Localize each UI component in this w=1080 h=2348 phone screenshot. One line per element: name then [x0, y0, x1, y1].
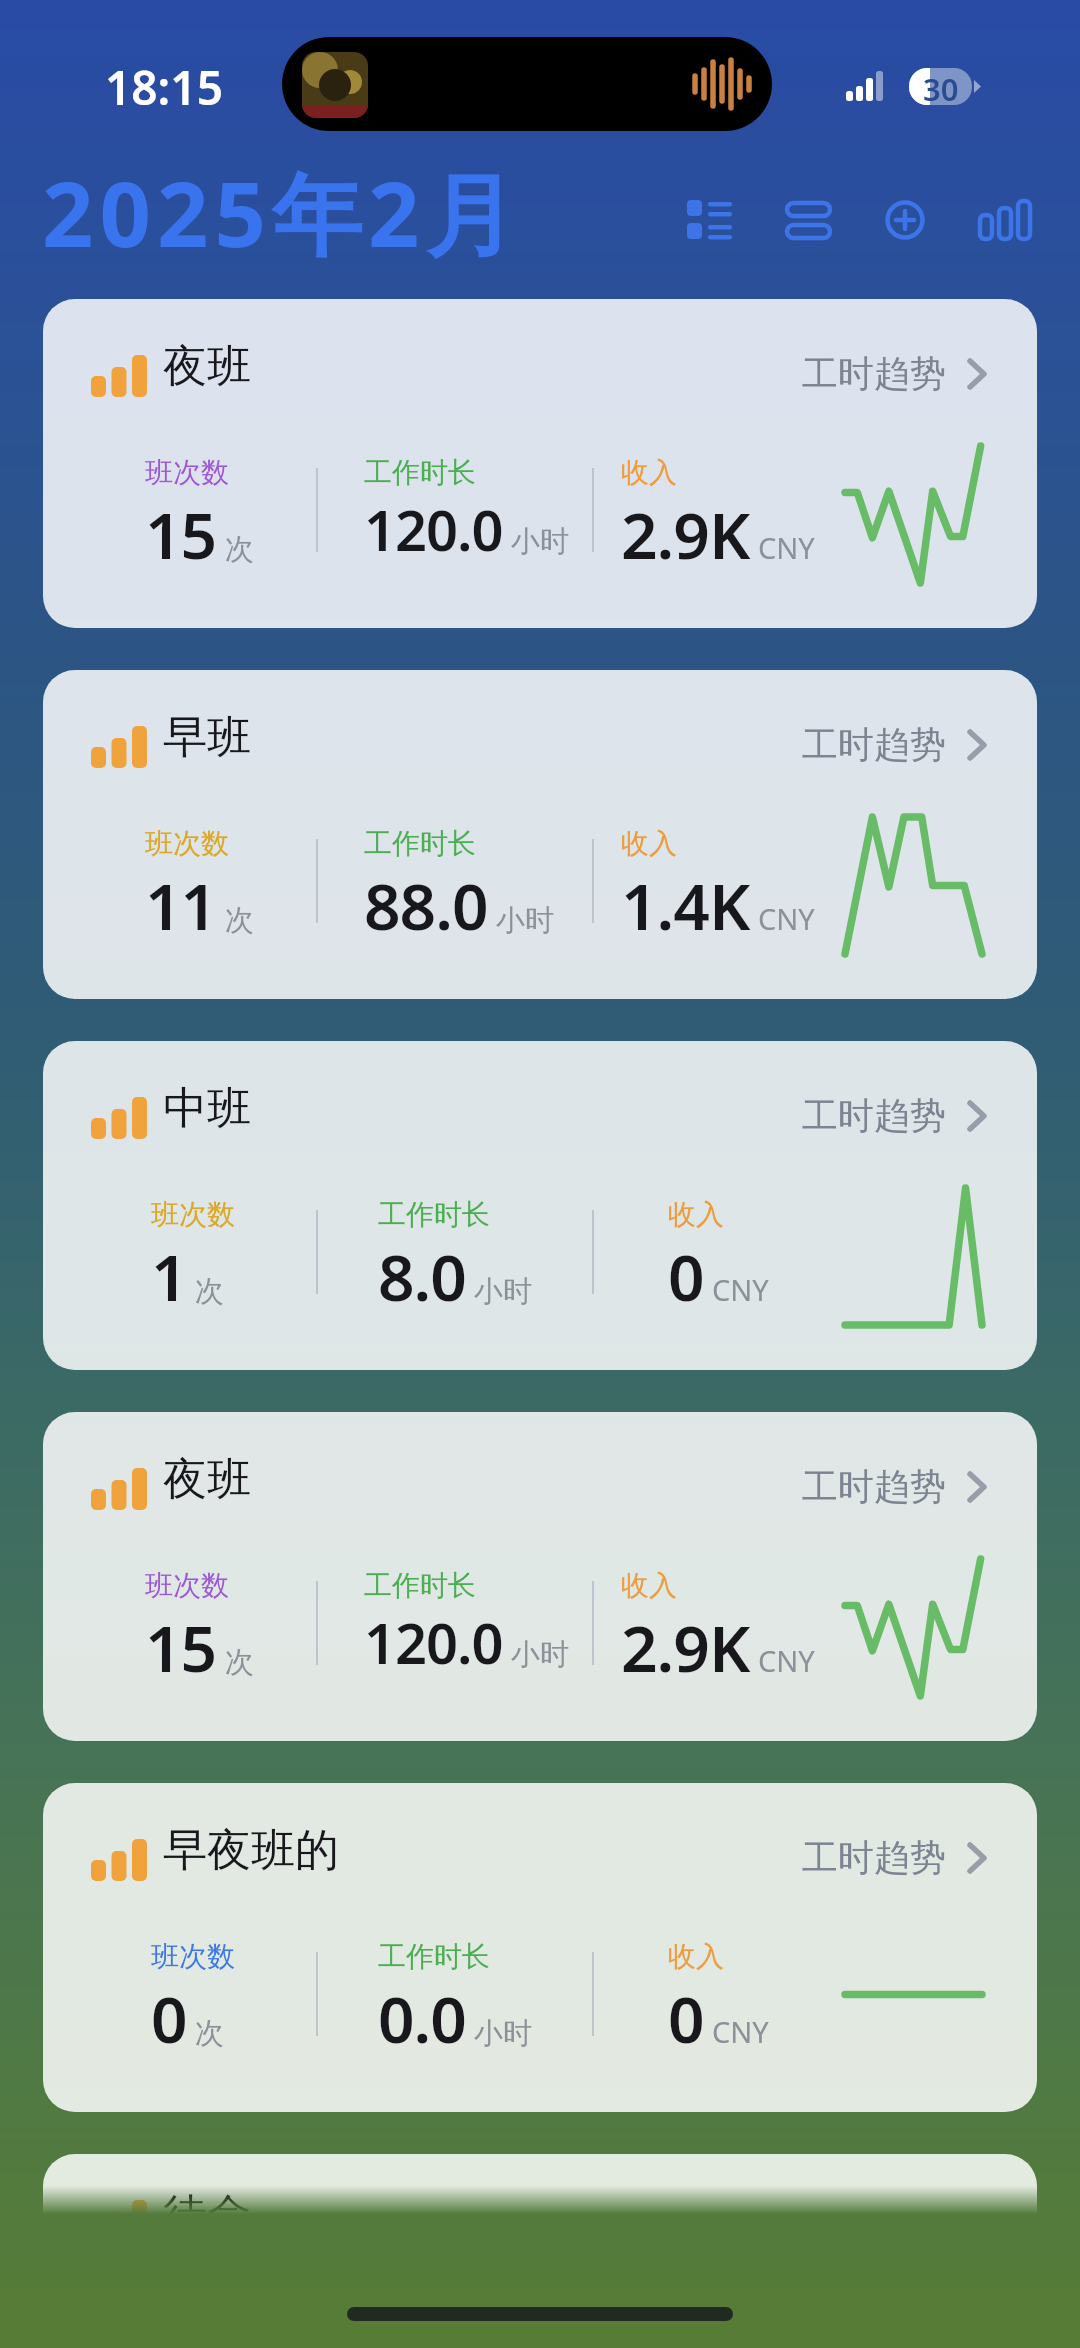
- staticText: 2.9K: [621, 491, 750, 578]
- staticText: 8.0: [378, 1233, 466, 1320]
- button[interactable]: [785, 201, 832, 241]
- staticText: CNY: [758, 899, 815, 938]
- staticText: 次: [225, 902, 254, 939]
- staticText: 工作时长: [364, 1568, 476, 1603]
- staticText: 待命: [163, 2188, 251, 2214]
- staticText: 工时趋势: [802, 351, 946, 396]
- staticText: 班次数: [151, 1939, 235, 1974]
- staticText: 工作时长: [364, 455, 476, 490]
- staticText: 工时趋势: [802, 1464, 946, 1509]
- button[interactable]: 夜班: [43, 1412, 1037, 1741]
- staticText: 收入: [668, 1939, 724, 1974]
- staticText: 早夜班的: [163, 1823, 339, 1878]
- staticText: 工时趋势: [802, 722, 946, 767]
- button[interactable]: 早夜班的: [43, 1783, 1037, 2112]
- button[interactable]: 工时趋势: [802, 351, 986, 396]
- staticText: 工时趋势: [802, 1835, 946, 1880]
- staticText: CNY: [758, 1641, 815, 1680]
- staticText: 30: [923, 68, 959, 105]
- staticText: 18:15: [105, 56, 223, 119]
- button[interactable]: 工时趋势: [802, 722, 986, 767]
- staticText: CNY: [712, 2012, 769, 2051]
- staticText: 次: [225, 531, 254, 568]
- staticText: 0.0: [378, 1975, 466, 2062]
- button[interactable]: 工时趋势: [802, 1093, 986, 1138]
- staticText: 小时: [511, 1636, 569, 1673]
- staticText: 15: [145, 1604, 217, 1691]
- button[interactable]: [978, 199, 1032, 241]
- staticText: 次: [195, 1273, 224, 1310]
- staticText: 小时: [511, 523, 569, 560]
- staticText: 1.4K: [621, 862, 750, 949]
- staticText: 夜班: [163, 1452, 251, 1507]
- staticText: 11: [145, 862, 217, 949]
- staticText: 小时: [496, 902, 554, 939]
- staticText: 班次数: [145, 826, 229, 861]
- button[interactable]: 中班: [43, 1041, 1037, 1370]
- staticText: 班次数: [145, 455, 229, 490]
- staticText: 次: [195, 2015, 224, 2052]
- staticText: 早班: [163, 710, 251, 765]
- staticText: 收入: [668, 1197, 724, 1232]
- staticText: 小时: [474, 2015, 532, 2052]
- staticText: 收入: [621, 1568, 677, 1603]
- staticText: 班次数: [151, 1197, 235, 1232]
- button[interactable]: 早班: [43, 670, 1037, 999]
- staticText: CNY: [712, 1270, 769, 1309]
- staticText: 收入: [621, 826, 677, 861]
- staticText: 收入: [621, 455, 677, 490]
- button[interactable]: [687, 198, 733, 242]
- staticText: 1: [151, 1233, 187, 1320]
- staticText: 次: [225, 1644, 254, 1681]
- staticText: 班次数: [145, 1568, 229, 1603]
- button[interactable]: 工时趋势: [802, 1835, 986, 1880]
- staticText: 88.0: [364, 862, 488, 949]
- button[interactable]: [885, 200, 925, 240]
- staticText: CNY: [758, 528, 815, 567]
- staticText: 工时趋势: [802, 1093, 946, 1138]
- staticText: 0: [668, 1233, 704, 1320]
- staticText: 小时: [474, 1273, 532, 1310]
- staticText: 2.9K: [621, 1604, 750, 1691]
- staticText: 夜班: [163, 339, 251, 394]
- staticText: 0: [668, 1975, 704, 2062]
- staticText: 工作时长: [378, 1197, 490, 1232]
- button[interactable]: 夜班: [43, 299, 1037, 628]
- staticText: 0: [151, 1975, 187, 2062]
- staticText: 15: [145, 491, 217, 578]
- staticText: 中班: [163, 1081, 251, 1136]
- staticText: 120.0: [364, 491, 503, 567]
- button[interactable]: 工时趋势: [802, 1464, 986, 1509]
- staticText: 120.0: [364, 1604, 503, 1680]
- staticText: 工作时长: [364, 826, 476, 861]
- button[interactable]: 2025年2月: [42, 151, 522, 274]
- staticText: 工作时长: [378, 1939, 490, 1974]
